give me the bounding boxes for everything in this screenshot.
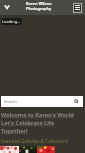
staticText: Photography	[26, 6, 52, 11]
staticText: Karen Wilson	[26, 1, 52, 6]
button[interactable]: Loading...	[1, 18, 22, 25]
button[interactable]: Let's Celebrate Life	[1, 119, 55, 127]
staticText: Loading...	[2, 19, 21, 24]
button[interactable]: Search	[1, 96, 83, 107]
staticText: Featured Galleries & Collections	[1, 138, 69, 144]
button[interactable]: Together!	[1, 127, 28, 135]
button[interactable]: Menu	[70, 0, 85, 15]
button[interactable]: Welcome to Karen's World	[1, 111, 74, 119]
button[interactable]: Expand	[0, 0, 14, 14]
staticText: Search	[4, 99, 17, 104]
